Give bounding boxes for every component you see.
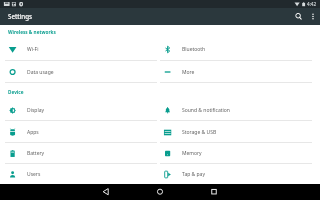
button[interactable]: Storage & USB — [160, 122, 312, 143]
button[interactable]: Display — [5, 100, 157, 121]
button[interactable]: Battery — [5, 143, 157, 164]
staticText: Data usage — [27, 69, 54, 76]
button[interactable]: Back — [86, 184, 126, 200]
button[interactable]: Tap & pay — [160, 164, 312, 185]
staticText: Memory — [182, 150, 202, 157]
staticText: Display — [27, 107, 45, 114]
button[interactable]: Recent apps — [194, 184, 234, 200]
button[interactable]: Sound & notification — [160, 100, 312, 121]
staticText: Apps — [27, 129, 39, 136]
staticText: 4:42 — [307, 1, 317, 7]
button[interactable]: Memory — [160, 143, 312, 164]
staticText: Sound & notification — [182, 107, 230, 114]
staticText: Storage & USB — [182, 129, 217, 136]
button[interactable]: More options — [306, 8, 320, 25]
staticText: Bluetooth — [182, 46, 206, 53]
button[interactable]: Apps — [5, 122, 157, 143]
staticText: Battery — [27, 150, 45, 157]
button[interactable]: More — [160, 61, 312, 83]
staticText: Settings — [8, 12, 33, 20]
staticText: Wireless & networks — [8, 29, 56, 35]
button[interactable]: Users — [5, 164, 157, 185]
staticText: Device — [8, 89, 24, 95]
button[interactable]: Bluetooth — [160, 38, 312, 61]
button[interactable]: Data usage — [5, 61, 157, 83]
button[interactable]: Wi-Fi — [5, 38, 157, 61]
button[interactable]: Home — [140, 184, 180, 200]
staticText: Users — [27, 171, 41, 178]
staticText: Wi-Fi — [27, 46, 39, 53]
staticText: More — [182, 69, 195, 76]
button[interactable]: Search — [291, 8, 306, 25]
staticText: Tap & pay — [182, 171, 205, 178]
